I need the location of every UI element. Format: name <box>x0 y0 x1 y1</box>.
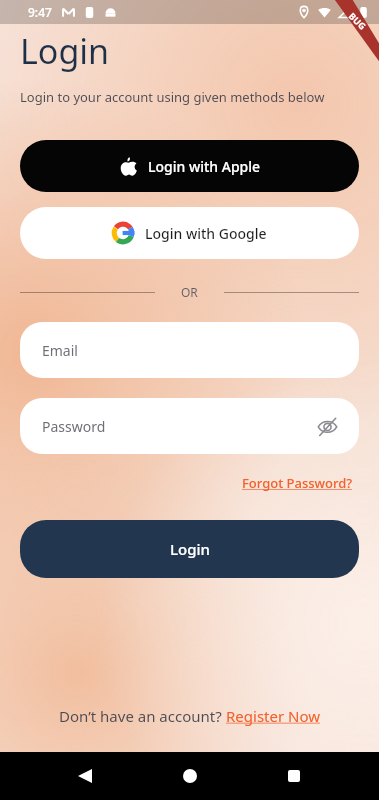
button[interactable]: Login <box>20 520 359 578</box>
staticText: Email <box>42 341 78 360</box>
button[interactable]: Password <box>20 398 359 454</box>
staticText: OR <box>181 284 198 300</box>
staticText: 9:47 <box>28 4 52 20</box>
staticText: Forgot Password? <box>242 474 353 492</box>
staticText: Login to your account using given method… <box>20 88 325 106</box>
staticText: Login <box>170 539 210 559</box>
staticText: Login with Google <box>145 224 267 243</box>
button[interactable]: Login with Google <box>20 207 359 259</box>
staticText: Login <box>20 28 110 74</box>
staticText: BUG <box>347 10 369 32</box>
button[interactable]: Show password <box>309 408 345 444</box>
button[interactable]: Back <box>65 756 105 796</box>
button[interactable]: Recents <box>274 756 314 796</box>
button[interactable]: Email <box>20 322 359 378</box>
button[interactable]: Login with Apple <box>20 140 359 192</box>
staticText: Login with Apple <box>148 157 261 176</box>
button[interactable]: Forgot Password? <box>238 470 357 496</box>
staticText: Don’t have an account? <box>59 706 226 726</box>
button[interactable]: Home <box>170 756 210 796</box>
staticText: Password <box>42 417 106 436</box>
button[interactable]: Register Now <box>226 706 321 726</box>
staticText: Register Now <box>226 706 321 726</box>
